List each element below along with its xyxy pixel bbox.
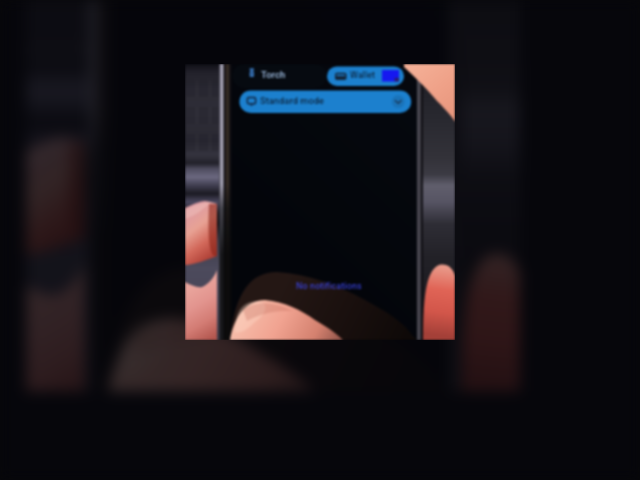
staticText: Standard mode: [260, 95, 325, 106]
staticText: No notifications: [296, 281, 362, 292]
staticText: Wallet: [350, 70, 376, 80]
button[interactable]: Torch: [0, 0, 640, 480]
staticText: Torch: [261, 69, 286, 80]
